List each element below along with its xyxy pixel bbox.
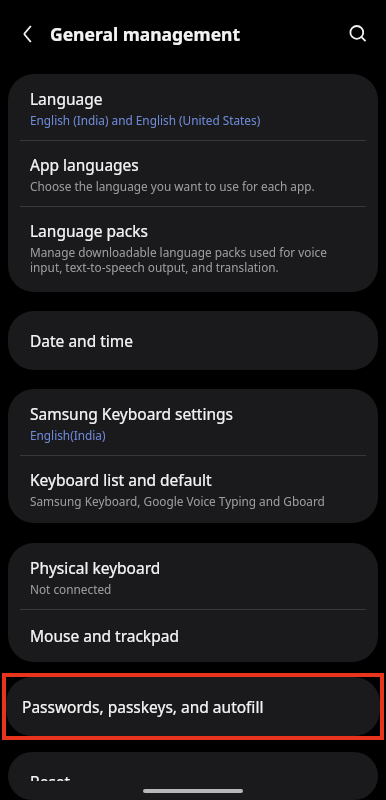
button[interactable]: Date and time: [8, 311, 378, 370]
staticText: Not connected: [30, 581, 112, 597]
staticText: Samsung Keyboard, Google Voice Typing an…: [30, 493, 325, 509]
staticText: Physical keyboard: [30, 557, 161, 578]
staticText: Reset: [30, 771, 71, 781]
staticText: Choose the language you want to use for …: [30, 178, 315, 194]
button[interactable]: Keyboard list and default: [8, 456, 378, 523]
button[interactable]: Passwords, passkeys, and autofill: [6, 677, 380, 736]
button[interactable]: Mouse and trackpad: [8, 610, 378, 662]
staticText: Manage downloadable language packs used …: [30, 244, 356, 276]
button[interactable]: Reset: [8, 752, 378, 800]
button[interactable]: Language: [8, 74, 378, 140]
staticText: App languages: [30, 154, 139, 175]
button[interactable]: App languages: [8, 141, 378, 206]
staticText: Date and time: [30, 330, 134, 351]
button[interactable]: Back: [10, 16, 46, 52]
staticText: Passwords, passkeys, and autofill: [22, 696, 264, 717]
button[interactable]: Physical keyboard: [8, 543, 378, 609]
staticText: Language packs: [30, 220, 148, 241]
staticText: Keyboard list and default: [30, 469, 212, 490]
staticText: General management: [50, 22, 241, 46]
staticText: English(India): [30, 427, 106, 443]
staticText: Language: [30, 88, 103, 109]
button[interactable]: Samsung Keyboard settings: [8, 389, 378, 455]
staticText: Samsung Keyboard settings: [30, 403, 233, 424]
staticText: English (India) and English (United Stat…: [30, 112, 261, 128]
button[interactable]: Search: [338, 14, 378, 54]
button[interactable]: Language packs: [8, 207, 378, 292]
staticText: Mouse and trackpad: [30, 625, 179, 646]
